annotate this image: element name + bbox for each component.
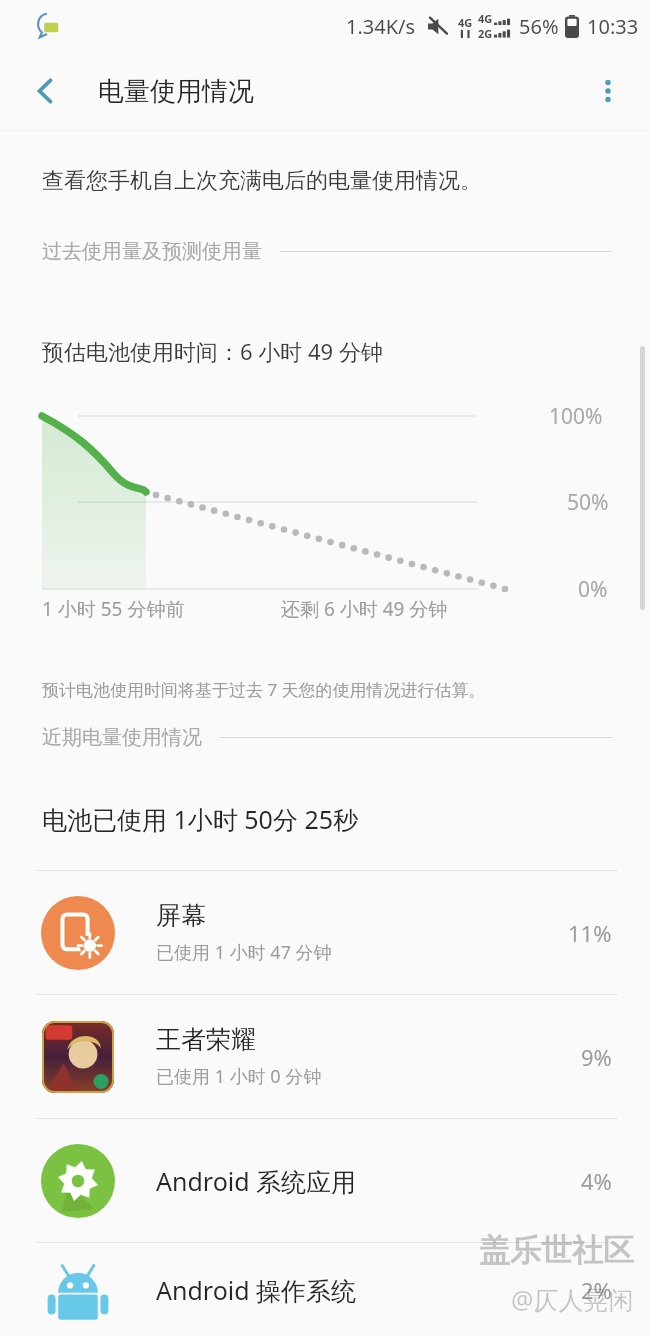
- staticText: 已使用 1 小时 47 分钟: [156, 940, 332, 965]
- button[interactable]: 王者荣耀: [0, 995, 650, 1118]
- button[interactable]: Back: [18, 63, 74, 119]
- staticText: 10:33: [587, 13, 639, 40]
- staticText: Android 系统应用: [156, 1164, 357, 1198]
- staticText: 电量使用情况: [98, 75, 254, 108]
- staticText: 50%: [567, 488, 609, 517]
- staticText: 预计电池使用时间将基于过去 7 天您的使用情况进行估算。: [42, 678, 486, 701]
- staticText: 56%: [519, 13, 559, 40]
- staticText: 2G: [478, 26, 493, 41]
- button[interactable]: 屏幕: [0, 871, 650, 994]
- staticText: 盖乐世社区: [479, 1231, 634, 1270]
- button[interactable]: Android 操作系统: [0, 1243, 650, 1336]
- staticText: 王者荣耀: [156, 1024, 256, 1055]
- staticText: 已使用 1 小时 0 分钟: [156, 1064, 322, 1089]
- staticText: 4G: [458, 15, 473, 30]
- staticText: 电池已使用 1小时 50分 25秒: [42, 802, 359, 836]
- staticText: @仄人晃闲: [511, 1282, 634, 1316]
- staticText: 0%: [578, 575, 608, 604]
- staticText: 4%: [581, 1166, 612, 1196]
- staticText: 近期电量使用情况: [42, 725, 202, 750]
- staticText: 100%: [549, 402, 603, 431]
- staticText: 1.34K/s: [346, 13, 416, 40]
- button[interactable]: More options: [580, 63, 636, 119]
- staticText: 还剩 6 小时 49 分钟: [281, 596, 448, 622]
- staticText: 1 小时 55 分钟前: [42, 596, 185, 622]
- staticText: 4G: [478, 11, 493, 26]
- staticText: 过去使用量及预测使用量: [42, 239, 262, 264]
- staticText: 11%: [568, 918, 612, 948]
- staticText: Android 操作系统: [156, 1273, 357, 1307]
- staticText: 屏幕: [156, 900, 206, 931]
- staticText: 2%: [581, 1275, 612, 1305]
- button[interactable]: Android 系统应用: [0, 1119, 650, 1242]
- staticText: 预估电池使用时间：6 小时 49 分钟: [42, 336, 383, 366]
- staticText: 查看您手机自上次充满电后的电量使用情况。: [42, 167, 482, 195]
- staticText: 9%: [581, 1042, 612, 1072]
